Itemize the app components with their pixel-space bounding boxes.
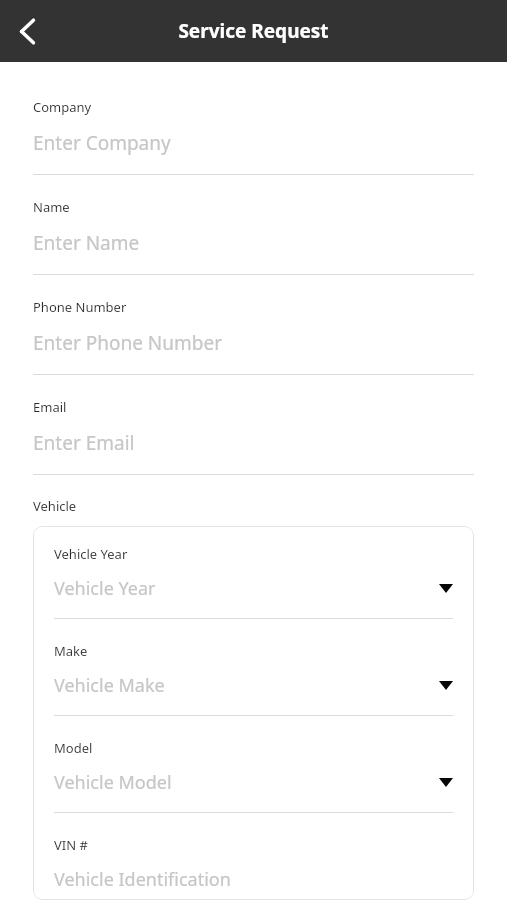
- staticText: Vehicle: [33, 497, 77, 515]
- staticText: Company: [33, 98, 92, 116]
- staticText: VIN #: [54, 836, 88, 854]
- staticText: Vehicle Year: [54, 576, 156, 601]
- staticText: Phone Number: [33, 298, 127, 316]
- button[interactable]: Email: [33, 375, 474, 475]
- staticText: Vehicle Identification: [54, 867, 231, 892]
- staticText: Enter Email: [33, 430, 135, 456]
- staticText: Name: [33, 198, 70, 216]
- staticText: Enter Name: [33, 230, 140, 256]
- button[interactable]: VIN #: [54, 813, 453, 900]
- button[interactable]: Phone Number: [33, 275, 474, 375]
- button[interactable]: Company: [33, 62, 474, 175]
- button[interactable]: Name: [33, 175, 474, 275]
- staticText: Vehicle Make: [54, 673, 165, 698]
- staticText: Enter Company: [33, 130, 171, 156]
- staticText: Model: [54, 739, 93, 757]
- button[interactable]: Back: [0, 4, 54, 58]
- staticText: Vehicle Model: [54, 770, 172, 795]
- staticText: Vehicle Year: [54, 545, 128, 563]
- staticText: Enter Phone Number: [33, 330, 222, 356]
- staticText: Make: [54, 642, 88, 660]
- button[interactable]: Vehicle Year: [54, 526, 453, 619]
- button[interactable]: Model: [54, 716, 453, 813]
- staticText: Service Request: [178, 18, 329, 44]
- staticText: Email: [33, 398, 67, 416]
- button[interactable]: Make: [54, 619, 453, 716]
